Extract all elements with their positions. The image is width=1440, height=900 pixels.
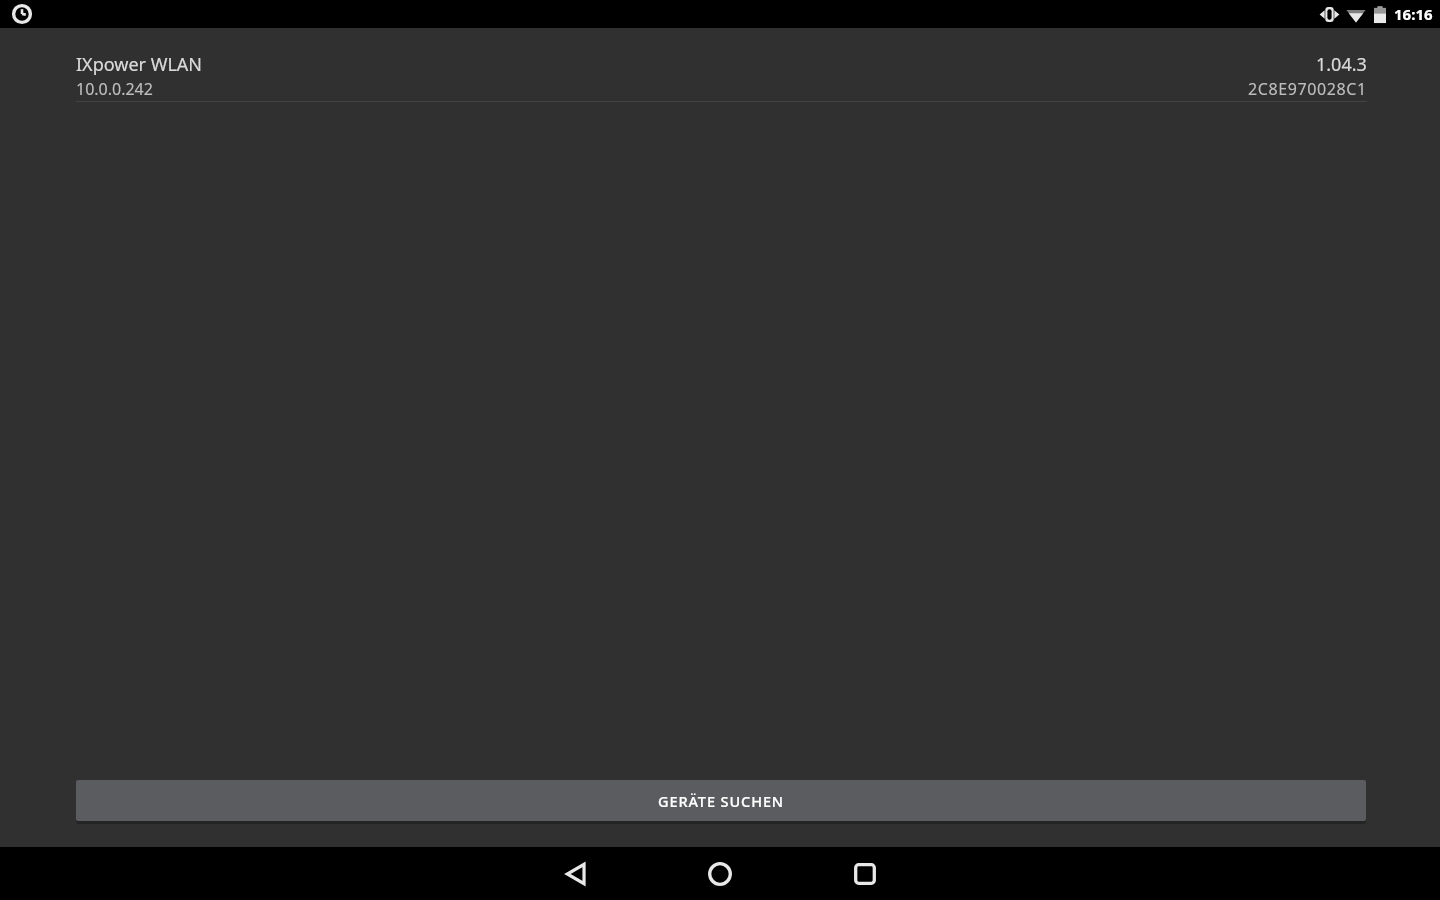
staticText: IXpower WLAN	[76, 52, 203, 77]
staticText: 1.04.3	[1316, 52, 1367, 77]
staticText: 10.0.0.242	[76, 78, 153, 100]
staticText: GERÄTE SUCHEN	[658, 791, 785, 811]
staticText: 16:16	[1394, 4, 1433, 24]
button[interactable]: Back	[547, 847, 607, 900]
button[interactable]: GERÄTE SUCHEN	[76, 780, 1366, 821]
button[interactable]: IXpower WLAN	[0, 28, 1440, 102]
staticText: 2C8E970028C1	[1248, 78, 1367, 100]
button[interactable]: Home	[690, 847, 750, 900]
button[interactable]: Recent apps	[835, 847, 895, 900]
